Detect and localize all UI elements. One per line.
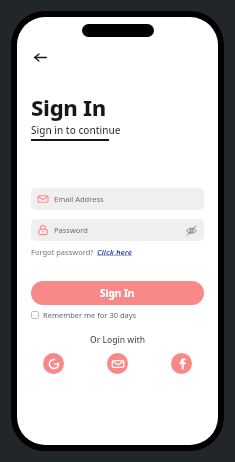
button[interactable]: Click here [97,247,132,257]
button[interactable]: Sign in with Google [43,353,64,374]
button[interactable]: Show password [185,224,197,236]
staticText: Password [54,225,88,235]
button[interactable]: Sign In [31,281,204,305]
staticText: Click here [97,247,132,257]
staticText: Forgot password? [31,247,94,257]
button[interactable]: Password [31,219,204,241]
staticText: Sign In [31,92,106,122]
staticText: Sign In [100,286,135,300]
button[interactable]: Email Address [31,188,204,210]
staticText: Or Login with [90,334,146,346]
staticText: Sign in to continue [31,123,121,137]
button[interactable]: Remember me for 30 days [31,310,137,320]
staticText: Remember me for 30 days [43,310,137,320]
staticText: Email Address [54,194,104,204]
button[interactable]: Back [27,44,53,70]
button[interactable]: Sign in with Email [107,353,128,374]
button[interactable]: Sign in with Facebook [171,353,192,374]
